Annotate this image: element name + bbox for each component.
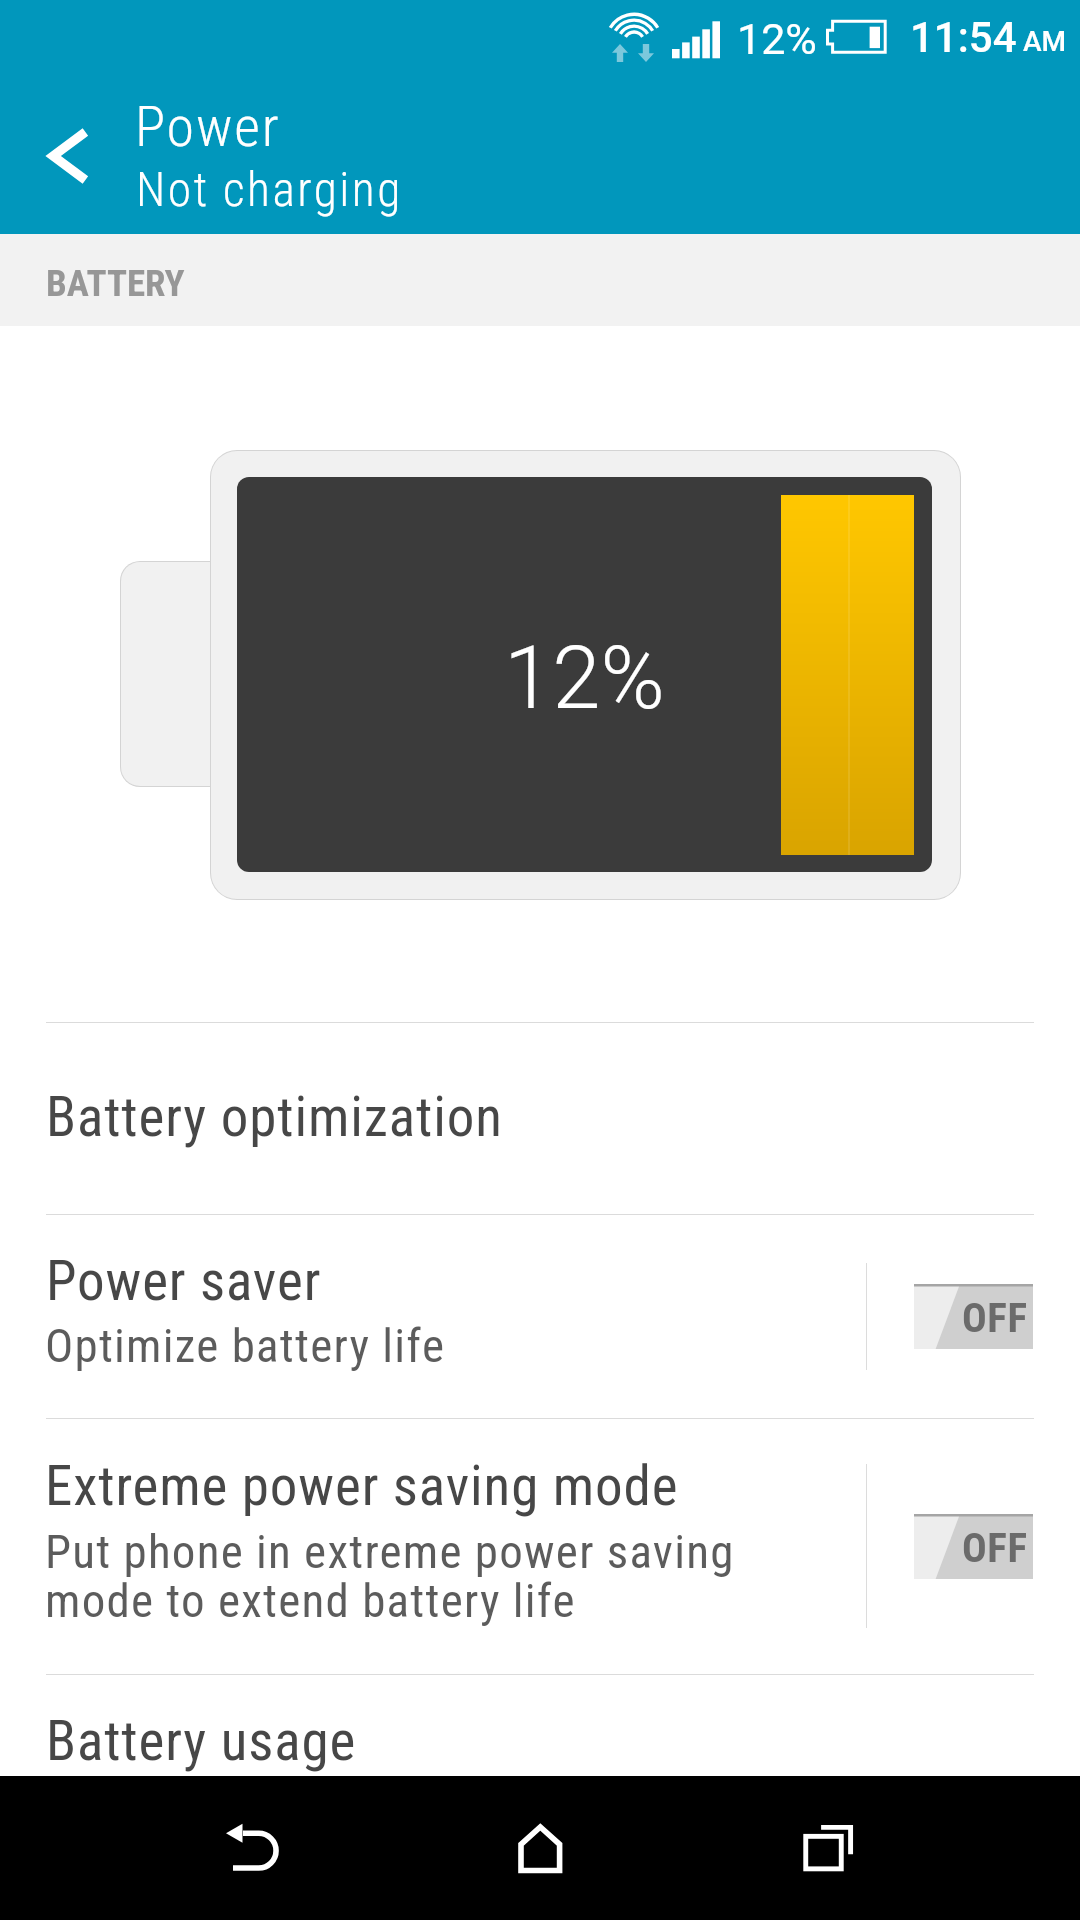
staticText: Power <box>135 94 281 160</box>
staticText: Put phone in extreme power saving mode t… <box>45 1529 735 1627</box>
button[interactable]: Battery optimization <box>0 1023 1080 1214</box>
button[interactable]: Extreme power saving mode <box>0 1419 1080 1674</box>
button[interactable]: Power saver <box>0 1215 1080 1418</box>
staticText: AM <box>1023 25 1067 58</box>
button[interactable]: Recent apps <box>755 1776 901 1920</box>
staticText: 11:54 <box>910 13 1017 62</box>
staticText: Not charging <box>136 162 403 218</box>
staticText: 12% <box>504 627 665 729</box>
staticText: Battery optimization <box>46 1085 503 1149</box>
staticText: Power saver <box>46 1249 322 1313</box>
button[interactable]: Home <box>467 1776 613 1920</box>
staticText: Battery usage <box>46 1709 357 1773</box>
button[interactable]: Navigate up <box>0 78 130 234</box>
staticText: OFF <box>962 1294 1028 1342</box>
button[interactable]: Back <box>180 1776 326 1920</box>
staticText: 12% <box>737 14 817 64</box>
button[interactable]: Battery usage <box>0 1675 1080 1776</box>
staticText: Optimize battery life <box>45 1323 446 1372</box>
staticText: Extreme power saving mode <box>45 1454 679 1518</box>
button[interactable]: Off <box>914 1284 1033 1349</box>
staticText: OFF <box>962 1524 1028 1572</box>
button[interactable]: Off <box>914 1514 1033 1579</box>
staticText: BATTERY <box>46 262 185 305</box>
